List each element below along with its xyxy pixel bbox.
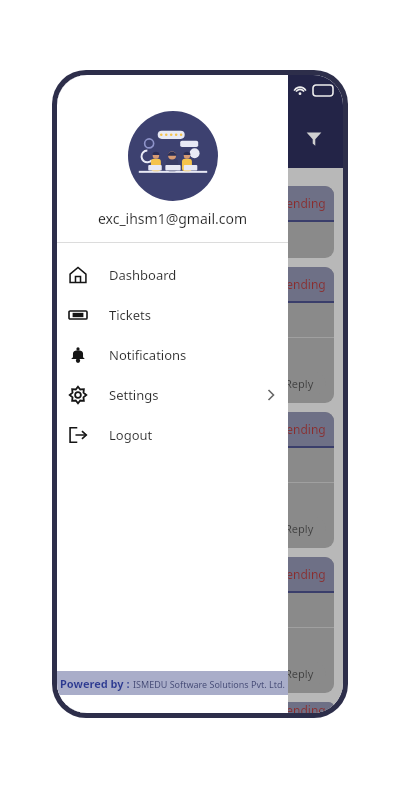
button[interactable]: Dashboard <box>57 255 288 295</box>
button[interactable]: Settings <box>57 375 288 415</box>
button[interactable]: Pending <box>66 186 334 258</box>
staticText: Pending <box>279 195 326 211</box>
staticText: Reply <box>285 666 314 681</box>
button[interactable]: Tickets <box>57 295 288 335</box>
staticText: exc_ihsm1@gmail.com <box>57 209 288 228</box>
button[interactable]: Notifications <box>57 335 288 375</box>
button[interactable]: Filter <box>299 124 329 154</box>
staticText: Pending <box>279 421 326 437</box>
staticText: Reply <box>285 521 314 536</box>
button[interactable]: Notifications <box>259 124 289 154</box>
staticText: Pending <box>279 276 326 292</box>
staticText: Reply <box>285 376 314 391</box>
button[interactable]: Pending <box>66 557 334 693</box>
staticText: L <box>74 311 80 325</box>
staticText: Dashboard <box>109 266 177 284</box>
button[interactable]: Pending <box>66 412 334 548</box>
staticText: Powered by : <box>60 676 133 691</box>
staticText: Settings <box>109 386 159 404</box>
button[interactable]: Pending <box>66 267 334 403</box>
staticText: Pending <box>279 566 326 582</box>
button[interactable]: Logout <box>57 415 288 455</box>
staticText: Logout <box>109 426 153 444</box>
staticText: 21 <box>74 234 89 252</box>
staticText: Pending <box>279 702 326 713</box>
button[interactable]: Pending <box>66 702 334 713</box>
staticText: ISMEDU Software Solutions Pvt. Ltd. <box>133 678 285 690</box>
staticText: Tickets <box>109 306 152 324</box>
staticText: Notifications <box>109 346 187 364</box>
